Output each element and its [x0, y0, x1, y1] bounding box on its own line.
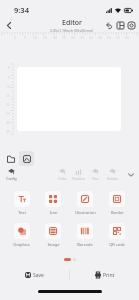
- staticText: Illustration: [75, 210, 96, 215]
- staticText: Barcode: [77, 242, 93, 247]
- button[interactable]: Config: [3, 168, 20, 181]
- button[interactable]: Position: [70, 168, 87, 181]
- staticText: 5: [8, 75, 10, 80]
- staticText: 25: [6, 111, 10, 116]
- staticText: 0: [14, 35, 16, 40]
- staticText: Position: [72, 176, 85, 181]
- button[interactable]: Illustration: [69, 191, 101, 215]
- button[interactable]: Icon: [37, 191, 69, 215]
- staticText: 30: [71, 35, 75, 40]
- button[interactable]: Layout: [115, 20, 126, 31]
- staticText: 10: [6, 84, 10, 89]
- button[interactable]: Undo: [104, 20, 115, 31]
- button[interactable]: Color: [54, 168, 71, 181]
- staticText: Rotate: [107, 176, 118, 181]
- staticText: 20: [6, 102, 10, 107]
- staticText: Graphics: [13, 242, 30, 247]
- staticText: 5: [24, 35, 26, 40]
- staticText: 25: [62, 35, 66, 40]
- staticText: 20: [53, 35, 57, 40]
- staticText: 60: [125, 35, 129, 40]
- staticText: Editor: [62, 18, 83, 28]
- staticText: 15: [6, 93, 10, 98]
- staticText: Text: [18, 210, 26, 215]
- staticText: Save: [33, 272, 44, 279]
- button[interactable]: Settings: [126, 20, 137, 31]
- staticText: 35: [80, 35, 84, 40]
- staticText: 10: [33, 35, 37, 40]
- button[interactable]: Layers: [3, 151, 18, 166]
- button[interactable]: Barcode: [69, 223, 101, 247]
- button[interactable]: Text: [6, 191, 37, 215]
- button[interactable]: QR code: [101, 223, 133, 247]
- button[interactable]: Rotate: [104, 168, 121, 181]
- staticText: 9:34: [14, 5, 29, 15]
- staticText: 45: [98, 35, 102, 40]
- button[interactable]: Size: [87, 168, 104, 181]
- staticText: Color: [58, 176, 67, 181]
- button[interactable]: Canvas: [19, 151, 34, 166]
- staticText: 55: [116, 35, 120, 40]
- staticText: Print: [103, 272, 115, 279]
- staticText: 30: [6, 120, 10, 125]
- button[interactable]: Print: [70, 267, 139, 283]
- button[interactable]: Expand: [124, 168, 137, 181]
- staticText: 35: [6, 129, 10, 134]
- staticText: QR code: [109, 242, 125, 247]
- button[interactable]: Back: [3, 20, 14, 31]
- staticText: 2.05x1.18inch (60x30mm): [50, 28, 94, 33]
- staticText: 15: [43, 35, 47, 40]
- button[interactable]: Save: [0, 267, 69, 283]
- staticText: Border: [111, 210, 124, 215]
- button[interactable]: Graphics: [6, 223, 37, 247]
- staticText: Icon: [49, 210, 58, 215]
- button[interactable]: Border: [101, 191, 133, 215]
- staticText: 40: [89, 35, 93, 40]
- button[interactable]: Image: [37, 223, 69, 247]
- staticText: 0: [8, 65, 10, 70]
- staticText: Config: [6, 176, 17, 181]
- staticText: 50: [107, 35, 111, 40]
- staticText: Size: [92, 176, 99, 181]
- staticText: Image: [47, 242, 60, 247]
